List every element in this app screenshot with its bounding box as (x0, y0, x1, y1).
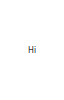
staticText: Hi (28, 45, 36, 55)
